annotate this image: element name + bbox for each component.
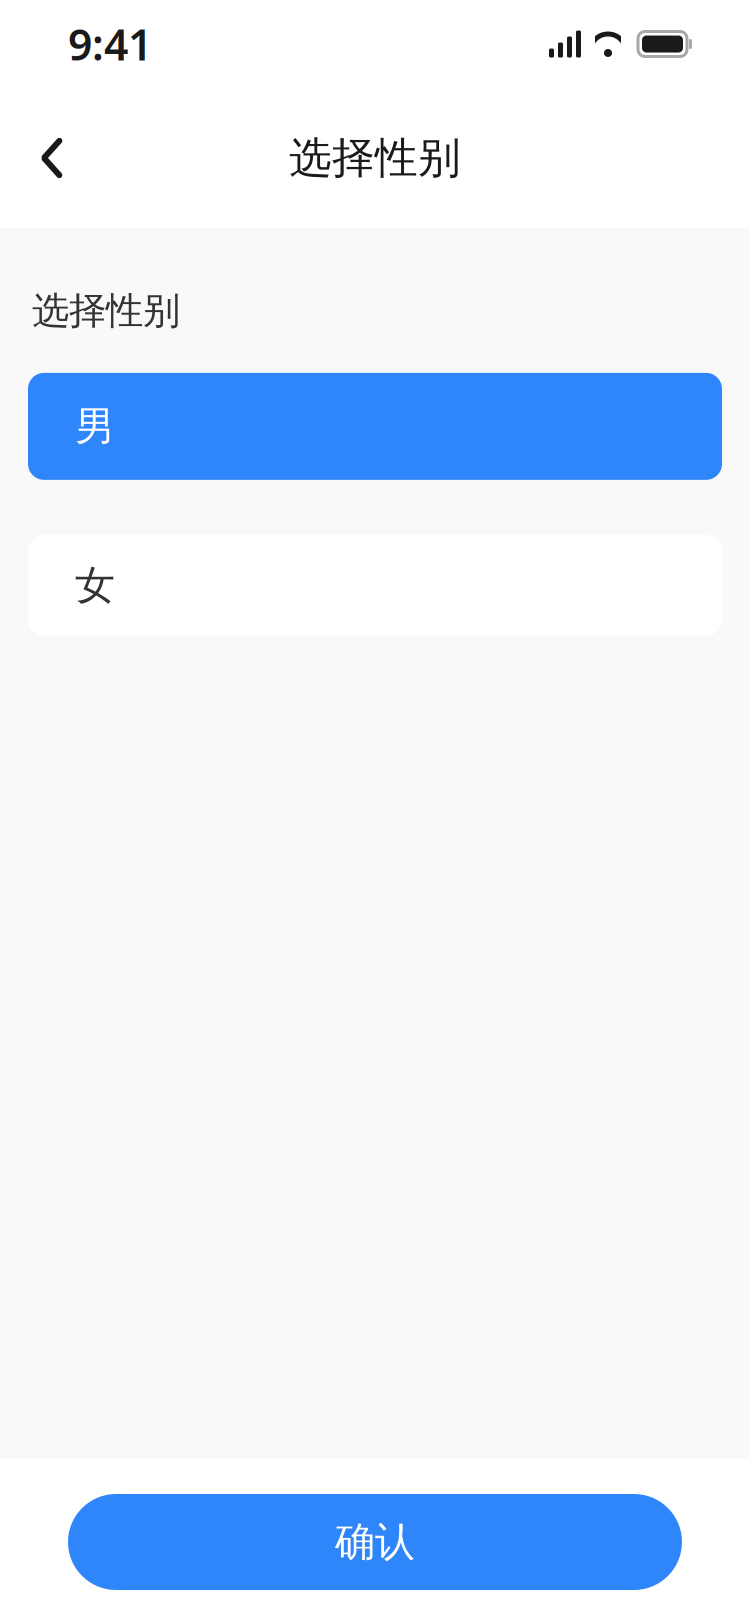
staticText: 男 [75,402,115,451]
staticText: 女 [75,561,115,610]
button[interactable]: 确认 [68,1494,682,1590]
staticText: 选择性别 [289,132,461,184]
button[interactable]: 返回 [14,120,90,196]
button[interactable]: 男 [28,373,722,480]
staticText: 9:41 [68,16,152,72]
staticText: 确认 [335,1517,415,1566]
staticText: 选择性别 [32,288,180,334]
button[interactable]: 女 [28,535,722,636]
